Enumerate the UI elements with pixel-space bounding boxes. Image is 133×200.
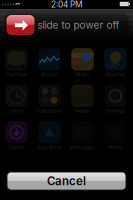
button[interactable]: Cancel bbox=[7, 172, 126, 190]
staticText: Calculator bbox=[37, 108, 62, 114]
staticText: App Store bbox=[37, 144, 61, 150]
staticText: iTunes bbox=[8, 144, 24, 150]
staticText: Stocks bbox=[41, 71, 58, 77]
staticText: Cancel bbox=[47, 174, 86, 188]
staticText: YouTube bbox=[6, 71, 27, 77]
staticText: Phone bbox=[108, 144, 123, 150]
staticText: Settings bbox=[105, 108, 125, 114]
staticText: Messages bbox=[69, 144, 95, 150]
staticText: Clock bbox=[9, 108, 23, 114]
staticText: 72° bbox=[110, 62, 120, 69]
staticText: Notes bbox=[75, 108, 90, 114]
staticText: 2:04 PM bbox=[51, 0, 82, 9]
staticText: Weather bbox=[105, 71, 126, 77]
staticText: Maps bbox=[75, 71, 89, 77]
staticText: slide to power off bbox=[37, 19, 119, 31]
